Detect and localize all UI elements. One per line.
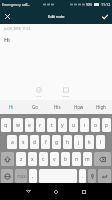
staticText: a (11, 139, 14, 146)
staticText: z (20, 156, 23, 163)
staticText: r (39, 122, 42, 129)
button[interactable]: Shift (1, 152, 14, 166)
button[interactable]: i (80, 118, 89, 132)
staticText: How (74, 104, 84, 110)
button[interactable]: Image (60, 86, 72, 98)
staticText: Image (62, 94, 70, 97)
staticText: u (72, 122, 76, 129)
button[interactable]: b (61, 152, 70, 166)
button[interactable]: . (79, 169, 86, 183)
staticText: h (66, 139, 70, 146)
button[interactable]: How (68, 100, 90, 114)
staticText: f (45, 139, 47, 146)
staticText: j (78, 139, 80, 146)
staticText: Edit note (48, 14, 65, 19)
button[interactable]: t (47, 118, 56, 132)
staticText: Go (32, 104, 38, 110)
staticText: n (75, 156, 79, 163)
staticText: Hi (4, 36, 10, 44)
button[interactable]: Save (97, 9, 112, 24)
staticText: o (94, 122, 98, 129)
staticText: Save (36, 94, 42, 97)
staticText: k (88, 139, 91, 146)
button[interactable]: j (74, 135, 83, 149)
staticText: High (96, 104, 106, 110)
staticText: Emergency call... (2, 2, 31, 7)
button[interactable]: x (28, 152, 37, 166)
button[interactable]: a (7, 135, 17, 149)
button[interactable]: u (69, 118, 78, 132)
button[interactable]: z (16, 152, 26, 166)
staticText: , (32, 173, 34, 180)
staticText: ?123 (17, 174, 26, 179)
staticText: 90% (86, 3, 93, 7)
button[interactable]: m (83, 152, 92, 166)
staticText: His (54, 104, 61, 110)
staticText: i (84, 122, 86, 129)
button[interactable]: v (50, 152, 59, 166)
staticText: t (51, 122, 53, 129)
staticText: p (105, 122, 109, 129)
staticText: . (82, 173, 84, 180)
button[interactable]: q (1, 118, 11, 132)
button[interactable]: Symbols (15, 169, 27, 183)
button[interactable]: Recents (70, 183, 98, 200)
staticText: c (42, 156, 45, 163)
staticText: y (61, 122, 64, 129)
staticText: s (22, 139, 25, 146)
button[interactable]: Emoji (1, 169, 13, 183)
staticText: l (100, 139, 102, 146)
button[interactable]: , (29, 169, 37, 183)
button[interactable]: Home (42, 183, 70, 200)
button[interactable]: c (39, 152, 48, 166)
staticText: w (16, 122, 20, 129)
staticText: e (28, 122, 31, 129)
button[interactable]: f (41, 135, 50, 149)
button[interactable]: High (90, 100, 112, 114)
staticText: v (53, 156, 56, 163)
button[interactable]: Enter (98, 169, 111, 183)
staticText: 11:12 (101, 2, 111, 7)
button[interactable] (39, 169, 77, 183)
staticText: Jul 26, 2018, 11:12 (4, 27, 31, 31)
button[interactable]: p (102, 118, 111, 132)
button[interactable]: e (25, 118, 34, 132)
staticText: g (55, 139, 59, 146)
button[interactable]: d (30, 135, 39, 149)
button[interactable]: h (63, 135, 72, 149)
staticText: b (64, 156, 68, 163)
button[interactable]: Voice input (88, 169, 96, 183)
button[interactable]: s (19, 135, 28, 149)
staticText: x (31, 156, 34, 163)
staticText: d (33, 139, 37, 146)
staticText: q (4, 122, 8, 129)
staticText: m (85, 156, 90, 163)
button[interactable]: w (13, 118, 23, 132)
button[interactable]: Back (14, 183, 42, 200)
staticText: Hi (9, 104, 14, 110)
button[interactable]: Go (23, 100, 46, 114)
button[interactable]: k (85, 135, 94, 149)
button[interactable]: o (91, 118, 100, 132)
button[interactable]: Hi (0, 100, 23, 114)
button[interactable]: Save (34, 86, 44, 98)
button[interactable]: Backspace (94, 152, 111, 166)
button[interactable]: His (46, 100, 68, 114)
button[interactable]: Close (0, 9, 15, 24)
button[interactable]: r (36, 118, 45, 132)
button[interactable]: n (72, 152, 81, 166)
button[interactable]: g (52, 135, 61, 149)
button[interactable]: l (96, 135, 105, 149)
button[interactable]: y (58, 118, 67, 132)
